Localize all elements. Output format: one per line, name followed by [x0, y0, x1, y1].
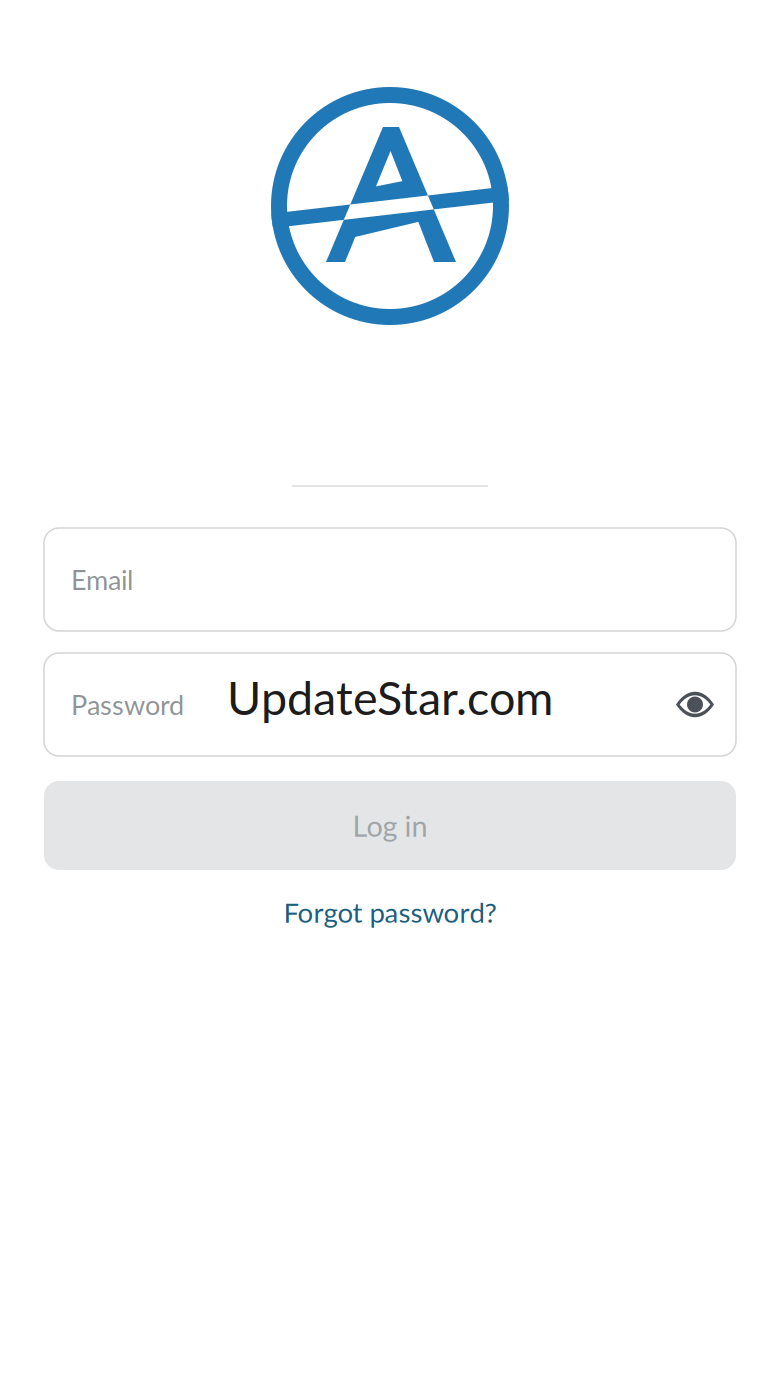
staticText: Email: [71, 563, 133, 596]
staticText: Log in: [352, 808, 427, 843]
button[interactable]: Forgot password?: [240, 890, 540, 934]
staticText: Forgot password?: [283, 895, 496, 928]
button[interactable]: Show password: [663, 672, 727, 736]
button[interactable]: Log in: [44, 781, 736, 870]
staticText: UpdateStar.com: [227, 669, 553, 725]
staticText: Password: [71, 688, 184, 721]
